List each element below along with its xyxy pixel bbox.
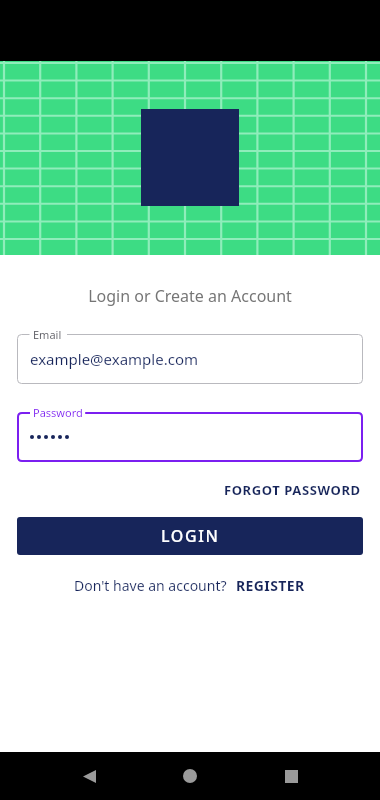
staticText: Don't have an account? [74,576,227,595]
staticText: Login or Create an Account [0,285,380,307]
button[interactable]: REGISTER [235,574,306,597]
button[interactable]: Home [173,759,207,793]
staticText: Email [33,327,62,342]
staticText: REGISTER [236,576,305,595]
staticText: Password [33,405,83,420]
staticText: FORGOT PASSWORD [224,481,361,499]
button[interactable]: Recent apps [274,759,308,793]
staticText: example@example.com [30,349,198,369]
button[interactable]: Email [17,334,363,384]
button[interactable]: Back [72,759,106,793]
button[interactable]: Password [17,412,363,462]
button[interactable]: FORGOT PASSWORD [222,479,363,501]
staticText: LOGIN [161,525,220,547]
button[interactable]: LOGIN [17,517,363,555]
